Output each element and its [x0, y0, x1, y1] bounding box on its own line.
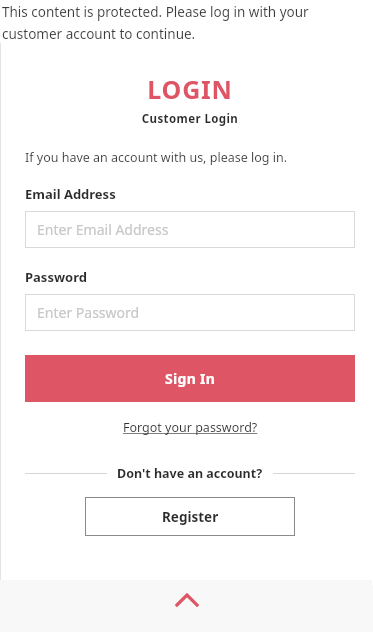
button[interactable]: Register [85, 497, 295, 536]
button[interactable]: Enter Email Address [25, 211, 355, 248]
staticText: Forgot your password? [123, 419, 258, 436]
button[interactable]: Forgot your password? [119, 416, 262, 439]
button[interactable]: Scroll to top [0, 580, 373, 632]
staticText: Register [162, 508, 219, 526]
staticText: If you have an account with us, please l… [25, 149, 288, 166]
staticText: Enter Password [37, 303, 140, 322]
staticText: Sign In [165, 369, 216, 388]
button[interactable]: Enter Password [25, 294, 355, 331]
staticText: Don't have an account? [117, 465, 263, 482]
staticText: Password [25, 268, 87, 286]
staticText: This content is protected. Please log in… [2, 3, 369, 43]
staticText: LOGIN [25, 72, 355, 106]
staticText: Customer Login [25, 111, 355, 127]
button[interactable]: Sign In [25, 355, 355, 402]
staticText: Enter Email Address [37, 220, 169, 239]
staticText: Email Address [25, 185, 116, 203]
